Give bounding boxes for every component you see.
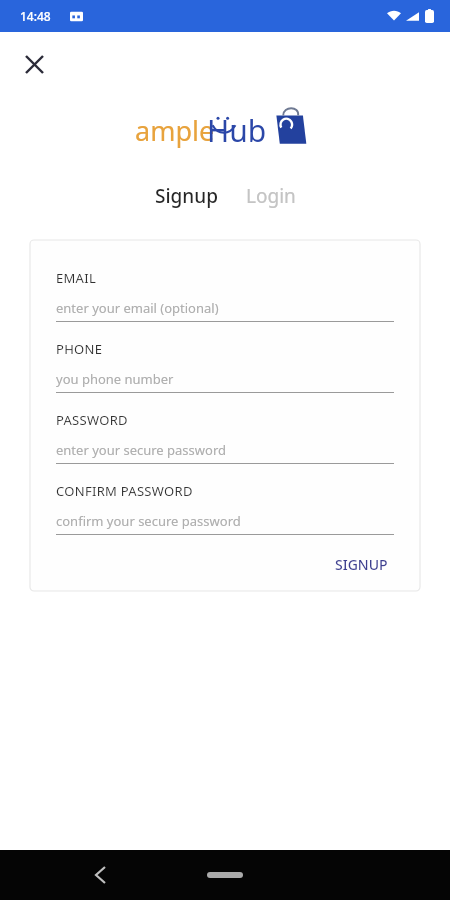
button[interactable]: CONFIRM PASSWORD [56,482,394,535]
staticText: PHONE [56,340,103,358]
staticText: confirm your secure password [56,512,241,530]
button[interactable]: Home [195,860,255,890]
staticText: 14:48 [20,8,51,24]
staticText: Hub [207,110,267,151]
staticText: EMAIL [56,269,97,287]
button[interactable]: EMAIL [56,269,394,322]
staticText: Login [246,183,296,209]
button[interactable]: Login [238,179,304,213]
button[interactable]: Close [16,46,52,82]
button[interactable]: PASSWORD [56,411,394,464]
staticText: enter your secure password [56,441,227,459]
staticText: ample [135,112,215,149]
button[interactable]: PHONE [56,340,394,393]
staticText: PASSWORD [56,411,128,429]
staticText: Signup [155,183,218,209]
button[interactable]: Back [78,853,122,897]
staticText: CONFIRM PASSWORD [56,482,193,500]
staticText: enter your email (optional) [56,299,219,317]
staticText: SIGNUP [335,555,388,574]
staticText: you phone number [56,370,174,388]
button[interactable]: Signup [147,179,226,213]
button[interactable]: SIGNUP [329,547,394,582]
